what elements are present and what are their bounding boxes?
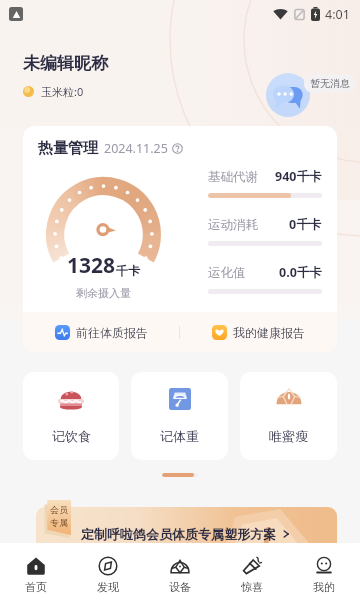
staticText: 唯蜜瘦 [269,428,308,444]
button[interactable]: 定制呼啦鸽会员体质专属塑形方案 [36,507,337,564]
staticText: 未编辑昵称 [23,53,108,74]
staticText: 0.0千卡 [279,264,322,281]
staticText: 我的 [313,580,335,594]
staticText: 专属 [50,517,68,528]
staticText: 剩余摄入量 [76,286,131,300]
staticText: 记体重 [160,428,199,444]
staticText: 940千卡 [275,168,322,185]
button[interactable]: 消息 [266,73,310,117]
staticText: 基础代谢 [208,169,258,185]
staticText: 发现 [97,580,119,594]
button[interactable]: 前往体质报告 [23,312,179,352]
staticText: 我的健康报告 [233,325,305,340]
staticText: 运化值 [208,265,246,281]
staticText: 记饮食 [52,428,91,444]
staticText: 首页 [25,580,47,594]
button[interactable]: 唯蜜瘦 [240,372,337,460]
staticText: 1328 [67,251,116,280]
button[interactable]: 首页 [0,556,72,600]
button[interactable]: 发现 [72,556,144,600]
button[interactable]: 我的 [288,556,360,600]
staticText: 2024.11.25 [104,140,168,157]
staticText: 暂无消息 [310,77,350,90]
staticText: 前往体质报告 [76,325,148,340]
staticText: 定制呼啦鸽会员体质专属塑形方案 [81,526,276,542]
button[interactable]: 惊喜 [216,556,288,600]
button[interactable]: 记体重 [131,372,228,460]
staticText: 热量管理 [38,139,98,158]
staticText: 设备 [169,580,191,594]
staticText: 惊喜 [241,580,263,594]
button[interactable]: 记饮食 [23,372,119,460]
staticText: 玉米粒:0 [41,84,84,99]
button[interactable]: 我的健康报告 [180,312,337,352]
button[interactable]: 设备 [144,556,216,600]
staticText: 0千卡 [289,216,322,233]
staticText: 运动消耗 [208,217,258,233]
staticText: 4:01 [325,6,350,23]
staticText: 千卡 [116,263,140,278]
staticText: 会员 [50,504,68,515]
